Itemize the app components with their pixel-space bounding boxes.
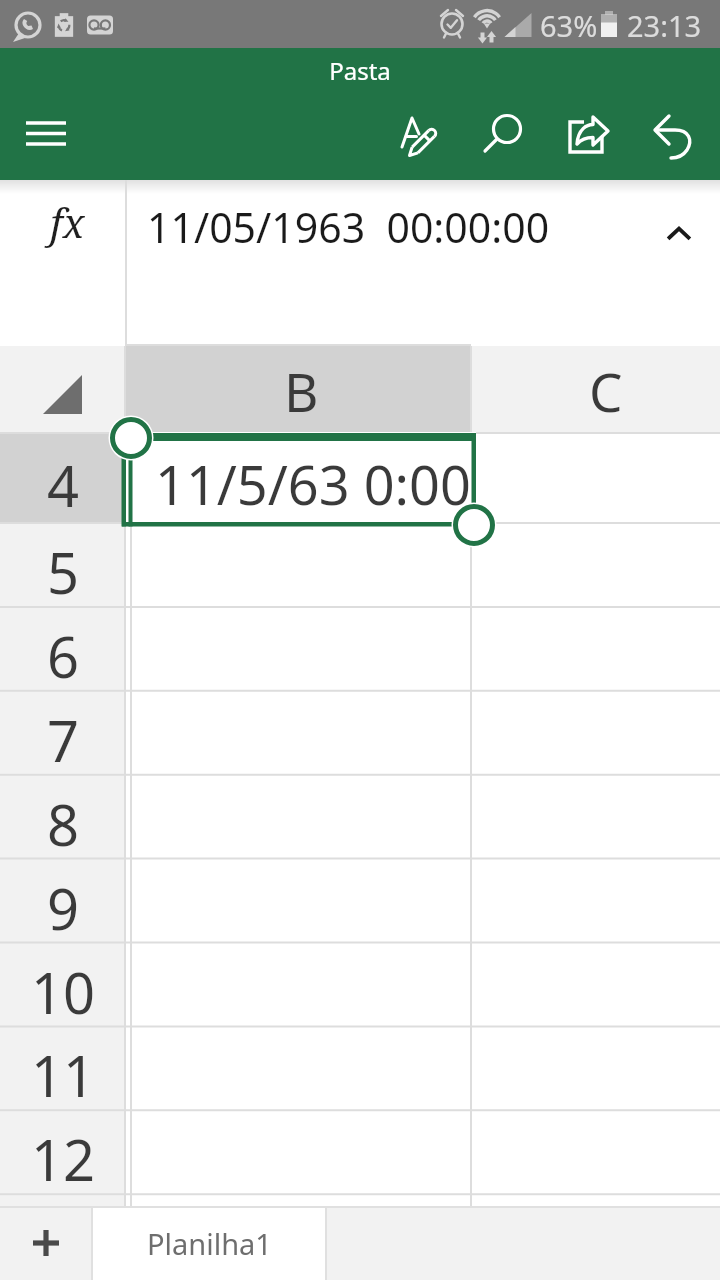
- staticText: 6: [47, 618, 80, 694]
- staticText: fx: [50, 195, 85, 249]
- staticText: 23:13: [627, 6, 702, 45]
- staticText: 11/05/1963 00:00:00: [147, 199, 550, 255]
- button[interactable]: Menu: [0, 100, 92, 180]
- button[interactable]: Collapse formula bar: [634, 180, 720, 260]
- staticText: 7: [47, 702, 80, 778]
- button[interactable]: Cell B4: [121, 434, 477, 527]
- staticText: Pasta: [0, 54, 720, 87]
- staticText: Planilha1: [147, 1224, 272, 1263]
- staticText: 5: [47, 534, 80, 610]
- button[interactable]: Planilha1: [92, 1206, 326, 1280]
- staticText: C: [589, 355, 623, 427]
- button[interactable]: Insert function: [0, 180, 126, 346]
- staticText: 10: [31, 954, 96, 1030]
- button[interactable]: Share: [548, 100, 632, 180]
- button[interactable]: Edit: [374, 100, 462, 180]
- button[interactable]: Search: [462, 100, 548, 180]
- staticText: 63%: [540, 6, 598, 45]
- staticText: 9: [47, 870, 80, 946]
- staticText: B: [284, 355, 319, 427]
- staticText: 8: [47, 786, 80, 862]
- staticText: 11/5/63 0:00: [155, 447, 471, 521]
- staticText: 12: [31, 1121, 96, 1197]
- staticText: 4: [47, 447, 80, 523]
- button[interactable]: Sheet area: [326, 1206, 720, 1280]
- staticText: 11: [31, 1037, 96, 1113]
- button[interactable]: Undo: [632, 100, 720, 180]
- button[interactable]: New sheet: [0, 1206, 92, 1280]
